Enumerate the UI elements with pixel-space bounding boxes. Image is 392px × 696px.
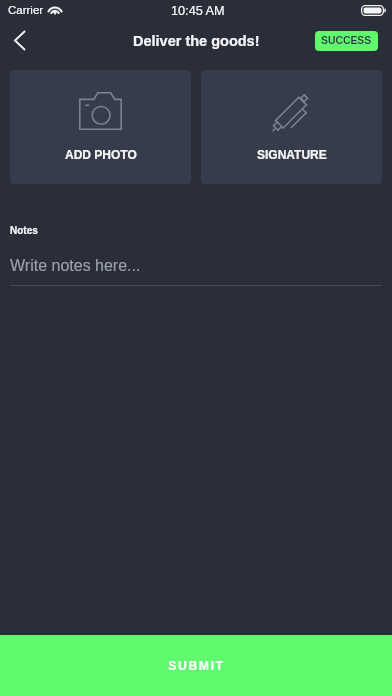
staticText: ADD PHOTO xyxy=(65,148,137,161)
staticText: SUCCESS xyxy=(321,35,372,47)
staticText: Notes xyxy=(10,225,38,236)
button[interactable]: Back xyxy=(0,20,42,60)
staticText: SIGNATURE xyxy=(257,148,327,161)
staticText: 10:45 AM xyxy=(171,4,225,18)
staticText: Deliver the goods! xyxy=(133,33,260,49)
staticText: SUBMIT xyxy=(168,659,225,673)
button[interactable]: SUBMIT xyxy=(0,635,392,696)
button[interactable]: SIGNATURE xyxy=(201,70,382,184)
staticText: Write notes here... xyxy=(10,257,141,275)
button[interactable]: SUCCESS xyxy=(315,31,378,51)
button[interactable]: ADD PHOTO xyxy=(10,70,191,184)
staticText: Carrier xyxy=(8,4,44,17)
